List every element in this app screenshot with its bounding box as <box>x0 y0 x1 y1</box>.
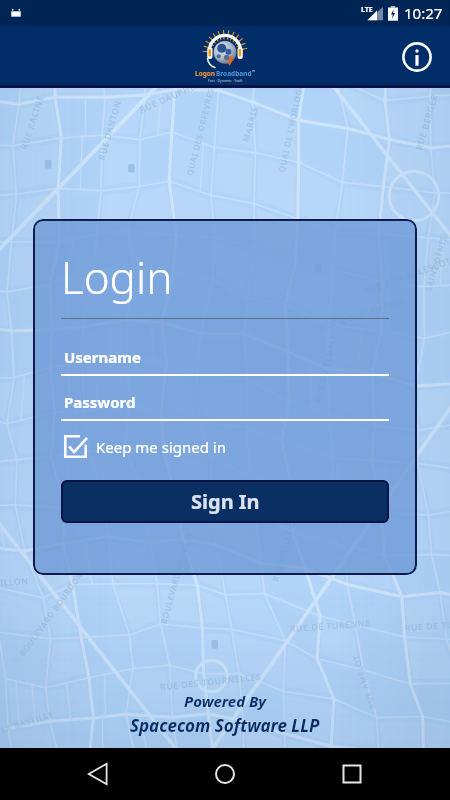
staticText: Sign In <box>191 488 260 515</box>
staticText: Keep me signed in <box>96 437 226 457</box>
staticText: QUAI DES ORFEVRES <box>184 86 216 176</box>
staticText: Password <box>64 392 136 412</box>
staticText: RUE RACINE <box>18 93 47 151</box>
button[interactable]: Password <box>61 381 389 421</box>
staticText: RUE DANTON <box>96 98 124 161</box>
staticText: Username <box>64 347 141 367</box>
staticText: LTE <box>361 5 373 15</box>
staticText: BOULEVARD HENRI IV <box>157 530 194 625</box>
staticText: ILLON <box>0 575 29 589</box>
staticText: MARAIS <box>240 105 261 143</box>
staticText: RUE QUINCAMPOIX <box>317 294 408 334</box>
staticText: RUE DAUPHINE <box>138 76 207 116</box>
staticText: RUE DES TOURNELLES <box>160 671 262 693</box>
staticText: RUE DU TEMPLE <box>312 332 339 403</box>
staticText: RUE AMELOT <box>349 653 378 710</box>
button[interactable]: Sign In <box>61 480 389 523</box>
staticText: BOULEVARD BOURDON <box>17 569 85 658</box>
button[interactable]: Keep me signed in <box>61 435 226 458</box>
staticText: RUE DE TURB <box>405 618 450 634</box>
button[interactable]: Username <box>61 336 389 376</box>
button[interactable]: Info <box>400 40 434 74</box>
staticText: Fast · Dynamic · Swift <box>208 78 243 83</box>
staticText: Logon <box>195 69 216 78</box>
staticText: RUE BERGER <box>413 92 441 152</box>
staticText: RUE PIERRE LESCOT <box>363 255 450 297</box>
staticText: Powered By <box>184 691 267 711</box>
staticText: LA BASTILLE <box>0 708 55 735</box>
staticText: Spacecom Software LLP <box>130 714 320 737</box>
staticText: 10:27 <box>404 3 443 23</box>
staticText: RUE DE TURENNE <box>290 617 371 635</box>
staticText: SAINT-DENIS <box>422 235 449 292</box>
staticText: Login <box>61 247 173 307</box>
staticText: Broadband <box>216 69 252 78</box>
button[interactable]: Recent apps <box>329 751 375 797</box>
button[interactable]: Back <box>75 751 121 797</box>
staticText: ™ <box>252 69 256 74</box>
staticText: RUE VIEILLE DU TEMPLE <box>269 477 310 582</box>
staticText: QUAI DE L'HORLOGE <box>276 82 305 173</box>
button[interactable]: Home <box>202 751 248 797</box>
